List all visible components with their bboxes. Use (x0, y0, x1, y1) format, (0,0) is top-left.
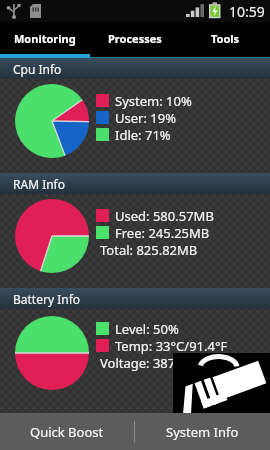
staticText: Battery Info (13, 291, 81, 307)
other: Watermark (173, 353, 270, 413)
staticText: System Info (166, 423, 239, 441)
staticText: 10:59 (229, 2, 265, 21)
staticText: Cpu Info (13, 61, 62, 77)
staticText: Temp: 33°C/91.4°F (115, 337, 228, 354)
staticText: RAM Info (13, 176, 66, 192)
button[interactable]: Monitoring (0, 22, 90, 54)
button[interactable]: System Info (135, 413, 270, 450)
button[interactable]: Processes (90, 22, 180, 54)
staticText: Processes (108, 31, 162, 46)
staticText: Monitoring (14, 31, 76, 46)
staticText: Tools (211, 31, 240, 46)
button[interactable]: Quick Boost (0, 413, 134, 450)
staticText: User: 19% (115, 109, 176, 126)
staticText: Total: 825.82MB (100, 241, 198, 258)
staticText: Idle: 71% (115, 126, 171, 143)
staticText: System: 10% (115, 92, 192, 109)
staticText: Used: 580.57MB (115, 207, 214, 224)
staticText: Voltage: 3870mV (100, 354, 203, 371)
button[interactable]: Tools (180, 22, 270, 54)
staticText: Free: 245.25MB (115, 224, 210, 241)
staticText: Quick Boost (30, 423, 104, 441)
staticText: Level: 50% (115, 320, 179, 337)
